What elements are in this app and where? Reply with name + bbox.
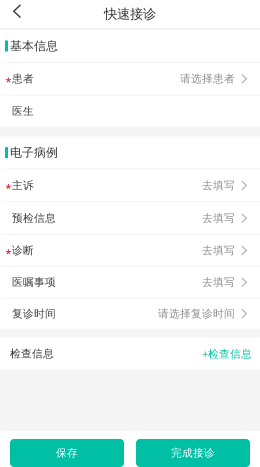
staticText: 完成接诊	[171, 446, 215, 459]
staticText: 去填写	[202, 212, 235, 225]
staticText: 快速接诊	[104, 6, 156, 22]
staticText: 医嘱事项	[12, 276, 56, 289]
staticText: 诊断	[12, 244, 34, 257]
button[interactable]: 保存	[10, 439, 124, 467]
staticText: +检查信息	[202, 346, 252, 361]
staticText: 患者	[12, 72, 34, 85]
button[interactable]: 检查信息	[0, 338, 260, 370]
staticText: 电子病例	[10, 145, 58, 160]
staticText: 请选择患者	[180, 72, 235, 85]
button[interactable]: *	[0, 63, 260, 95]
staticText: 基本信息	[10, 39, 58, 53]
button[interactable]: 医嘱事项	[0, 267, 260, 298]
staticText: *	[5, 181, 11, 195]
button[interactable]: *	[0, 235, 260, 266]
button[interactable]: 医生	[0, 96, 260, 127]
button[interactable]: Back	[0, 0, 33, 28]
staticText: 医生	[12, 104, 34, 118]
staticText: 保存	[56, 446, 78, 459]
staticText: 预检信息	[12, 212, 56, 225]
staticText: 请选择复诊时间	[158, 307, 235, 320]
staticText: 复诊时间	[12, 307, 56, 320]
staticText: *	[5, 74, 11, 88]
button[interactable]: 预检信息	[0, 202, 260, 234]
staticText: 去填写	[202, 244, 235, 257]
staticText: 去填写	[202, 179, 235, 192]
staticText: 主诉	[12, 179, 34, 192]
button[interactable]: *	[0, 169, 260, 201]
staticText: *	[5, 246, 11, 260]
button[interactable]: 复诊时间	[0, 299, 260, 329]
button[interactable]: 完成接诊	[136, 439, 250, 467]
staticText: 检查信息	[10, 347, 54, 360]
staticText: 去填写	[202, 276, 235, 289]
